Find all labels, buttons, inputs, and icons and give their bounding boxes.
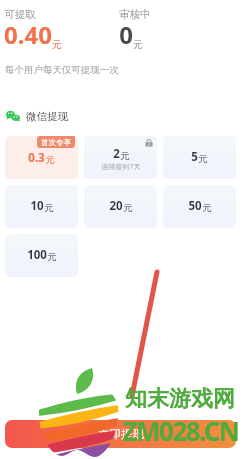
other: Locked [145,139,153,147]
staticText: 元 [45,154,55,166]
staticText: 微信提现 [26,110,68,123]
staticText: 元 [133,38,143,51]
staticText: 连续签到7天 [101,162,141,172]
staticText: 审核中 [119,8,151,21]
button[interactable]: 首次专享 [5,136,78,179]
staticText: 元 [120,150,130,162]
button[interactable]: 5 [163,136,236,179]
staticText: 元 [52,38,62,51]
staticText: 5 [191,149,198,165]
other: WeChat [5,108,21,124]
button[interactable]: 100 [5,234,78,277]
staticText: 立即提现 [98,427,144,441]
staticText: 元 [44,202,54,214]
button[interactable]: Locked [84,136,157,179]
staticText: 100 [27,247,47,263]
staticText: 2 [113,146,120,162]
staticText: 元 [202,202,212,214]
staticText: 0 [119,18,133,51]
staticText: 0.3 [28,150,45,166]
staticText: 0.40 [4,18,52,51]
button[interactable]: 50 [163,185,236,228]
staticText: 元 [198,153,208,165]
staticText: 50 [188,198,202,214]
staticText: 元 [47,251,57,263]
button[interactable]: 20 [84,185,157,228]
staticText: 每个用户每天仅可提现一次 [5,64,119,76]
button[interactable]: 10 [5,185,78,228]
staticText: 首次专享 [41,138,71,147]
staticText: 20 [109,198,123,214]
staticText: 可提取 [4,8,36,21]
staticText: 知末游戏网 [125,385,235,413]
button[interactable]: 立即提现 [5,420,236,448]
staticText: 10 [30,198,44,214]
staticText: 元 [123,202,133,214]
staticText: ZM028.CN [122,413,239,448]
